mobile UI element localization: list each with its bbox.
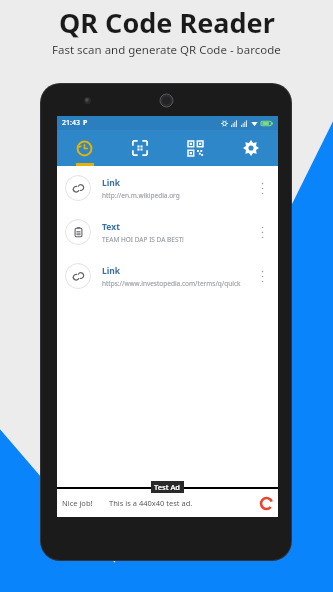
staticText: QR Code Reader [59,4,275,41]
button[interactable]: More options [254,261,270,291]
staticText: 21:43 [62,118,80,128]
staticText: P [83,118,88,128]
button[interactable]: Link [57,254,278,298]
button[interactable]: History [57,130,112,166]
staticText: Nice job! [62,498,93,508]
staticText: TEAM HOI DAP IS DA BEST! [102,235,184,244]
button[interactable]: Generate QR code [168,130,223,166]
button[interactable]: Text [57,210,278,254]
staticText: Text [102,221,120,233]
button[interactable]: Settings [223,130,278,166]
button[interactable]: Link [57,166,278,210]
staticText: Fast scan and generate QR Code - barcode [52,42,281,58]
staticText: Link [102,177,121,189]
staticText: Link [102,265,121,277]
button[interactable]: More options [254,217,270,247]
staticText: This is a 440x40 test ad. [109,498,193,508]
staticText: https://www.investopedia.com/terms/q/qui… [102,279,241,288]
button[interactable]: Nice job! [57,489,278,517]
button[interactable]: Scan QR code [112,130,167,166]
staticText: http://en.m.wikipedia.org [102,191,180,200]
button[interactable]: More options [254,173,270,203]
staticText: Test Ad [154,482,181,492]
